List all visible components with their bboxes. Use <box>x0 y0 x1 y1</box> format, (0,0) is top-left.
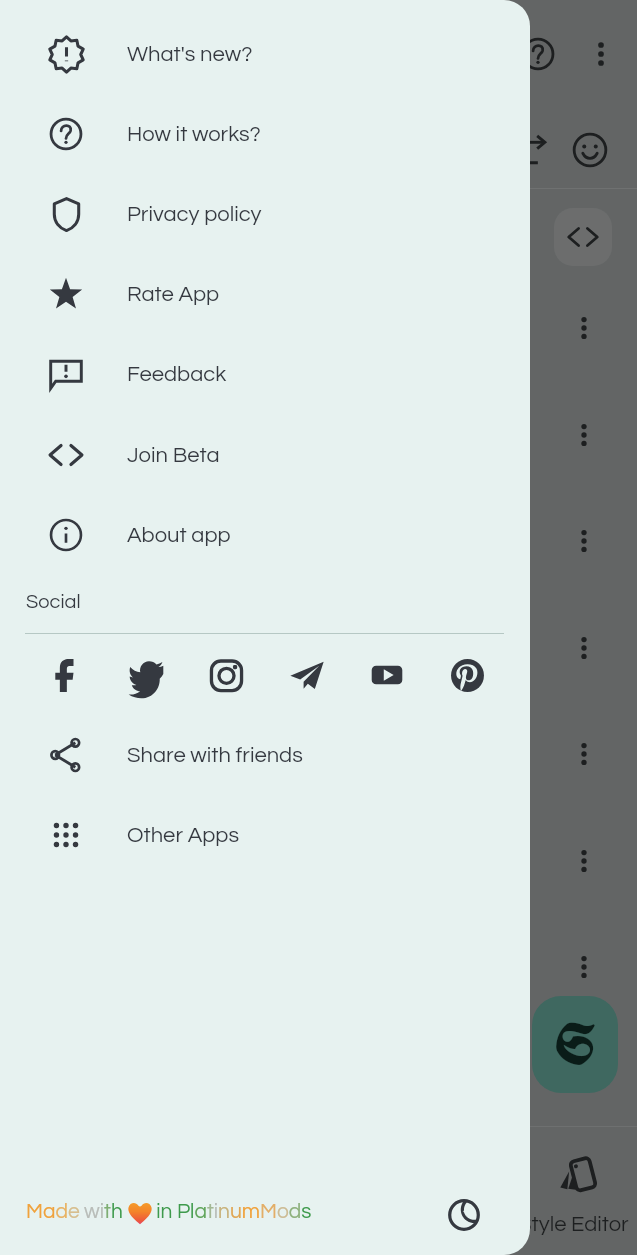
button[interactable]: Rate App <box>0 254 530 334</box>
button[interactable]: Instagram <box>198 647 254 703</box>
staticText: Made with in PlatinumMods <box>26 1201 312 1223</box>
button[interactable]: Help <box>514 30 562 78</box>
button[interactable]: YouTube <box>359 647 415 703</box>
staticText: What's new? <box>127 43 253 66</box>
button[interactable]: Item options <box>560 411 608 459</box>
staticText: Privacy policy <box>127 203 262 226</box>
button[interactable]: Twitter <box>118 647 174 703</box>
button[interactable]: Join Beta <box>0 415 530 495</box>
button[interactable]: What's new? <box>0 14 530 94</box>
button[interactable]: Telegram <box>279 647 335 703</box>
staticText: Feedback <box>127 363 227 386</box>
staticText: Style Editor <box>518 1213 629 1236</box>
button[interactable]: Other Apps <box>0 795 530 875</box>
button[interactable]: Item options <box>560 730 608 778</box>
staticText: Rate App <box>127 283 220 306</box>
staticText: Social <box>26 592 81 613</box>
button[interactable]: Feedback <box>0 334 530 414</box>
staticText: Join Beta <box>127 444 220 467</box>
staticText: How it works? <box>127 123 261 146</box>
button[interactable]: Code <box>554 208 612 266</box>
button[interactable]: Facebook <box>38 647 94 703</box>
button[interactable]: Item options <box>560 624 608 672</box>
button[interactable]: Redo <box>510 126 558 174</box>
staticText: About app <box>127 524 231 547</box>
button[interactable]: Share with friends <box>0 715 530 795</box>
button[interactable]: Item options <box>560 837 608 885</box>
staticText: Share with friends <box>127 744 303 767</box>
staticText: S <box>555 1008 596 1081</box>
staticText: Other Apps <box>127 824 240 847</box>
button[interactable]: About app <box>0 495 530 575</box>
button[interactable]: More options <box>577 30 625 78</box>
button[interactable]: Privacy policy <box>0 174 530 254</box>
button[interactable]: Dark mode <box>440 1191 488 1239</box>
button[interactable]: Item options <box>560 304 608 352</box>
button[interactable]: How it works? <box>0 94 530 174</box>
button[interactable]: Item options <box>560 943 608 991</box>
button[interactable]: Pinterest <box>439 647 495 703</box>
button[interactable]: Emoji <box>566 126 614 174</box>
button[interactable]: Style <box>532 996 618 1093</box>
button[interactable]: Item options <box>560 517 608 565</box>
